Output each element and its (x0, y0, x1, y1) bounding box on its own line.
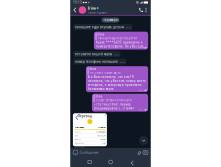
staticText: Время (74, 138, 80, 140)
staticText: Перевод (78, 114, 92, 118)
button[interactable]: Scroll to bottom (139, 136, 148, 145)
button[interactable]: Call (138, 7, 143, 13)
button[interactable]: Attach (137, 150, 141, 155)
staticText: Irina (88, 6, 96, 10)
staticText: Irina (96, 95, 103, 98)
button[interactable]: Back (130, 160, 133, 164)
button[interactable]: Recent apps (88, 160, 91, 164)
staticText: Irina (98, 33, 105, 36)
staticText: 13:48 (74, 111, 79, 114)
staticText: номер телефона напишите (75, 60, 118, 64)
staticText: Сообщение (80, 150, 99, 155)
staticText: 19:18 (125, 26, 130, 29)
staticText: LTE (102, 111, 105, 114)
staticText: ✕ (88, 1, 90, 4)
staticText: 5 000 ₽ (98, 125, 105, 129)
button[interactable]: Camera (143, 150, 148, 154)
staticText: 4G (136, 1, 139, 4)
staticText: Перевод (74, 125, 84, 129)
staticText: Исполнен (96, 130, 105, 133)
button[interactable]: More options (143, 6, 148, 13)
staticText: Карта ****6495 привязана к номеру телефо… (96, 40, 145, 48)
staticText: 19:19 (138, 46, 143, 49)
staticText: Комиссия (74, 142, 83, 144)
staticText: напишите куда вернуть деньги (75, 25, 124, 29)
staticText: 18 декабря (104, 18, 117, 22)
staticText: 0 ₽ (102, 142, 105, 144)
staticText: 19:21 (138, 88, 143, 92)
staticText: 19:13 (73, 1, 82, 4)
staticText: напишите куда вернуть деньги (98, 36, 138, 40)
staticText: 19:21 (138, 108, 143, 111)
staticText: 13:47 (100, 138, 105, 140)
staticText: 18.12.24 (97, 134, 105, 137)
staticText: ? (104, 114, 105, 118)
staticText: Irina (90, 67, 97, 71)
staticText: номер телефона напишите (96, 98, 132, 102)
staticText: 19:20 (119, 60, 124, 64)
staticText: Получатель (74, 145, 84, 148)
staticText: Лариса С. (96, 145, 105, 148)
staticText: А я Вам написала, что есть? Я написала, … (88, 75, 146, 91)
button[interactable]: Emoji (73, 150, 78, 155)
staticText: нет у меня вашей карты (90, 71, 121, 74)
staticText: +79216621868, Лариса Владимировна С. (ТГ… (94, 102, 134, 110)
staticText: Статус (74, 130, 80, 133)
staticText: нет у меня вашей карты (75, 52, 112, 56)
staticText: был(а) недавно (88, 11, 108, 14)
staticText: Дата (74, 134, 78, 137)
button[interactable]: Home (109, 160, 112, 164)
staticText: 19:19 (113, 53, 118, 56)
button[interactable]: Back (72, 7, 77, 13)
